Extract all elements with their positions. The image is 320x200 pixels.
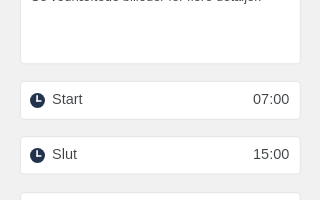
button[interactable]: Start (20, 82, 300, 118)
staticText: 07:00 (253, 91, 290, 107)
staticText: Se vedhæftede billeder for flere detalje… (31, 0, 262, 4)
button[interactable]: Se vedhæftede billeder for flere detalje… (20, 0, 300, 63)
staticText: 15:00 (253, 146, 290, 162)
button[interactable]: Pause (20, 193, 300, 200)
button[interactable]: Slut (20, 137, 300, 173)
staticText: Start (52, 91, 83, 107)
staticText: Slut (52, 146, 77, 162)
